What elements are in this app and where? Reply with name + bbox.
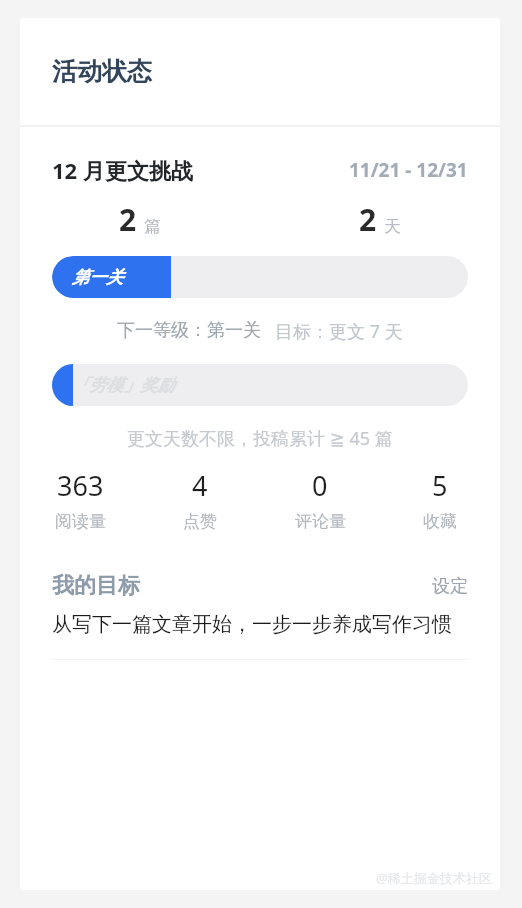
staticText: 收藏: [423, 511, 457, 532]
staticText: 阅读量: [55, 511, 106, 532]
staticText: 12 月更文挑战: [52, 155, 193, 185]
staticText: 更文天数不限，投稿累计 ≧ 45 篇: [127, 426, 393, 451]
button[interactable]: 第一关: [52, 256, 468, 298]
button[interactable]: 4: [140, 467, 260, 532]
staticText: 目标：更文 7 天: [275, 319, 403, 344]
staticText: 2: [119, 199, 137, 240]
button[interactable]: 活动状态: [20, 18, 500, 125]
button[interactable]: 363: [20, 467, 140, 532]
button[interactable]: 0: [260, 467, 380, 532]
staticText: 活动状态: [52, 56, 152, 87]
staticText: 第一关: [72, 267, 123, 288]
staticText: 4: [192, 467, 208, 504]
staticText: @稀土掘金技术社区: [376, 869, 492, 887]
button[interactable]: 5: [380, 467, 500, 532]
staticText: 「劳模」奖励: [72, 375, 174, 396]
staticText: 11/21 - 12/31: [349, 157, 468, 183]
staticText: 从写下一篇文章开始，一步一步养成写作习惯: [52, 612, 452, 637]
staticText: 设定: [432, 575, 468, 598]
button[interactable]: 「劳模」奖励: [52, 364, 468, 406]
button[interactable]: 2: [260, 199, 500, 240]
button[interactable]: 2: [20, 199, 260, 240]
staticText: 点赞: [183, 511, 217, 532]
staticText: 下一等级：第一关: [117, 319, 261, 342]
staticText: 篇: [144, 216, 161, 237]
staticText: 5: [432, 467, 448, 504]
staticText: 2: [359, 199, 377, 240]
staticText: 评论量: [295, 511, 346, 532]
staticText: 363: [57, 467, 104, 504]
staticText: 天: [384, 216, 401, 237]
button[interactable]: 设定: [432, 575, 468, 598]
staticText: 我的目标: [52, 572, 140, 600]
staticText: 0: [312, 467, 328, 504]
